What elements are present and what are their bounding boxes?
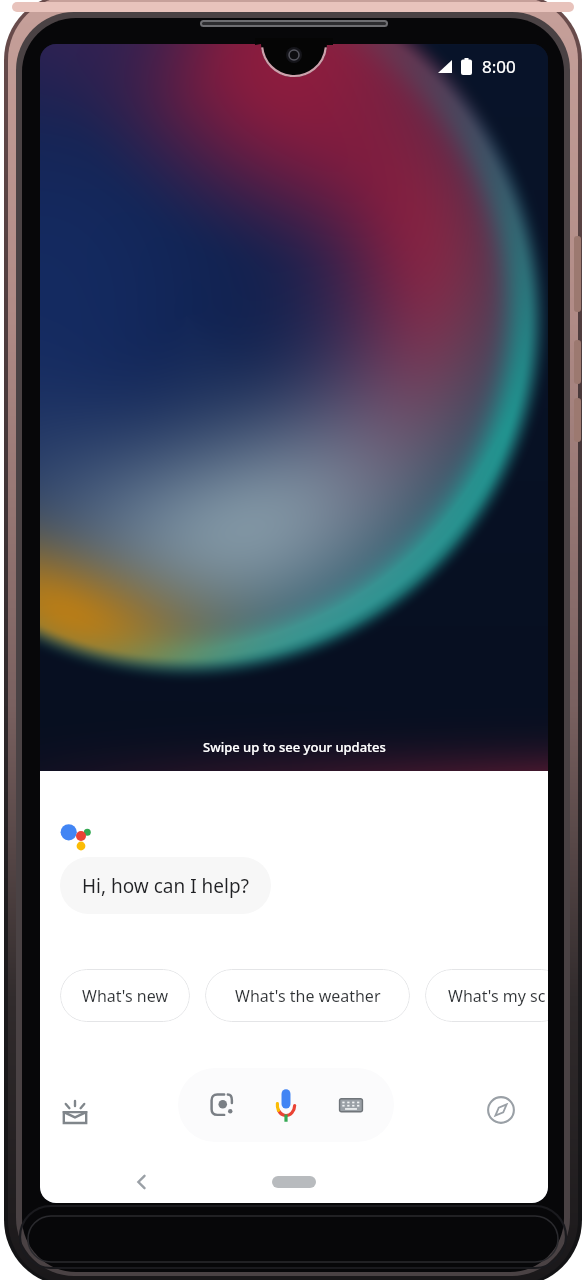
staticText: What's new bbox=[82, 985, 168, 1007]
button[interactable]: Microphone bbox=[265, 1084, 307, 1126]
staticText: Hi, how can I help? bbox=[82, 873, 249, 899]
button[interactable]: What's my sc bbox=[425, 969, 548, 1022]
staticText: 8:00 bbox=[482, 55, 516, 78]
staticText: Swipe up to see your updates bbox=[203, 738, 386, 756]
button[interactable]: What's the weather bbox=[205, 969, 410, 1022]
button[interactable]: What's new bbox=[60, 969, 190, 1022]
staticText: What's my sc bbox=[448, 985, 546, 1007]
button[interactable]: Hi, how can I help? bbox=[60, 857, 271, 914]
button[interactable]: Keyboard bbox=[330, 1084, 372, 1126]
button[interactable]: Home bbox=[272, 1176, 316, 1188]
button[interactable]: Back bbox=[127, 1167, 157, 1197]
button[interactable]: Explore bbox=[480, 1089, 522, 1131]
staticText: What's the weather bbox=[235, 985, 381, 1007]
button[interactable]: Updates bbox=[54, 1090, 96, 1132]
button[interactable]: Google Lens bbox=[201, 1084, 243, 1126]
